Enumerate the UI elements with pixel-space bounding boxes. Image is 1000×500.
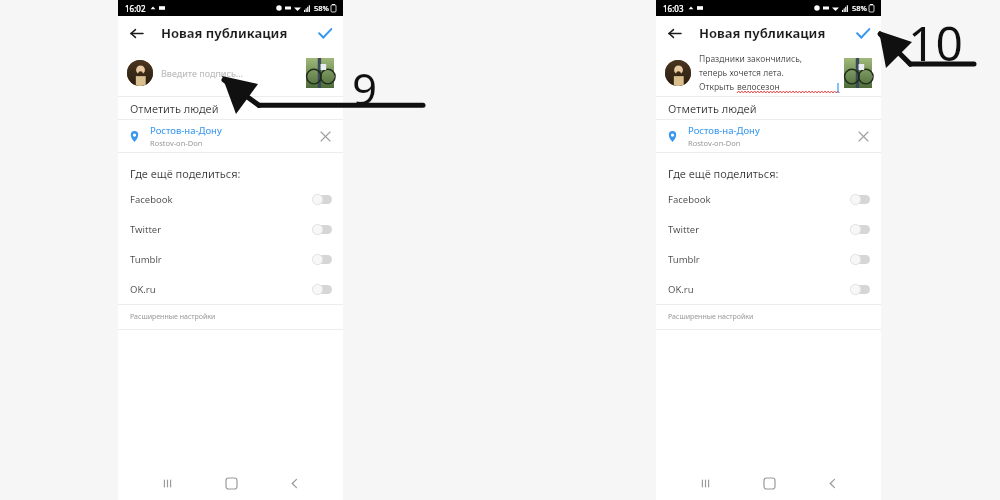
button[interactable]: Tumblr xyxy=(668,244,870,274)
staticText: 16:03 xyxy=(663,3,684,14)
button[interactable]: OK.ru xyxy=(668,274,870,304)
staticText: Twitter xyxy=(668,223,850,236)
staticText: Расширенные настройки xyxy=(668,312,754,322)
button[interactable]: Recents xyxy=(152,468,182,498)
button[interactable]: Back xyxy=(817,468,847,498)
button[interactable]: Home xyxy=(216,468,246,498)
button[interactable]: Tumblr xyxy=(130,244,332,274)
button[interactable]: Back xyxy=(279,468,309,498)
staticText: Расширенные настройки xyxy=(130,312,216,322)
staticText: Открыть xyxy=(699,81,737,93)
staticText: Новая публикация xyxy=(699,24,826,42)
staticText: Ростов-на-Дону xyxy=(688,124,760,137)
staticText: Tumblr xyxy=(668,253,850,266)
staticText: Отметить людей xyxy=(668,101,757,116)
staticText: 58% xyxy=(314,3,329,13)
staticText: 10 xyxy=(908,10,963,75)
button[interactable]: Ростов-на-Дону xyxy=(118,120,343,152)
staticText: 9 xyxy=(352,58,378,118)
button[interactable]: Home xyxy=(754,468,784,498)
staticText: Tumblr xyxy=(130,253,312,266)
staticText: OK.ru xyxy=(668,283,850,296)
button[interactable]: Facebook xyxy=(668,184,870,214)
staticText: Праздники закончились, xyxy=(699,53,803,65)
button[interactable]: Расширенные настройки xyxy=(656,305,881,329)
staticText: Rostov-on-Don xyxy=(688,138,741,148)
button[interactable]: Twitter xyxy=(130,214,332,244)
button[interactable]: Back xyxy=(124,21,148,45)
button[interactable]: OK.ru xyxy=(130,274,332,304)
staticText: 58% xyxy=(852,3,867,13)
staticText: Rostov-on-Don xyxy=(150,138,203,148)
staticText: Новая публикация xyxy=(161,24,288,42)
staticText: Где ещё поделиться: xyxy=(668,166,779,181)
staticText: Ростов-на-Дону xyxy=(150,124,222,137)
button[interactable]: Recents xyxy=(690,468,720,498)
button[interactable]: Праздники закончились, xyxy=(665,50,872,96)
button[interactable]: Ростов-на-Дону xyxy=(656,120,881,152)
button[interactable]: Facebook xyxy=(130,184,332,214)
staticText: Введите подпись... xyxy=(161,67,244,79)
button[interactable]: Расширенные настройки xyxy=(118,305,343,329)
staticText: Twitter xyxy=(130,223,312,236)
button[interactable]: Share post xyxy=(314,22,336,44)
button[interactable]: Введите подпись... xyxy=(127,50,334,96)
staticText: Где ещё поделиться: xyxy=(130,166,241,181)
staticText: теперь хочется лета. xyxy=(699,67,784,79)
staticText: Отметить людей xyxy=(130,101,219,116)
staticText: Facebook xyxy=(668,193,850,206)
button[interactable]: Back xyxy=(662,21,686,45)
button[interactable]: Twitter xyxy=(668,214,870,244)
staticText: велосезон xyxy=(737,81,780,93)
button[interactable]: Remove location xyxy=(313,124,337,148)
button[interactable]: Share post xyxy=(852,22,874,44)
staticText: Facebook xyxy=(130,193,312,206)
button[interactable]: Remove location xyxy=(851,124,875,148)
staticText: OK.ru xyxy=(130,283,312,296)
staticText: 16:02 xyxy=(125,3,146,14)
